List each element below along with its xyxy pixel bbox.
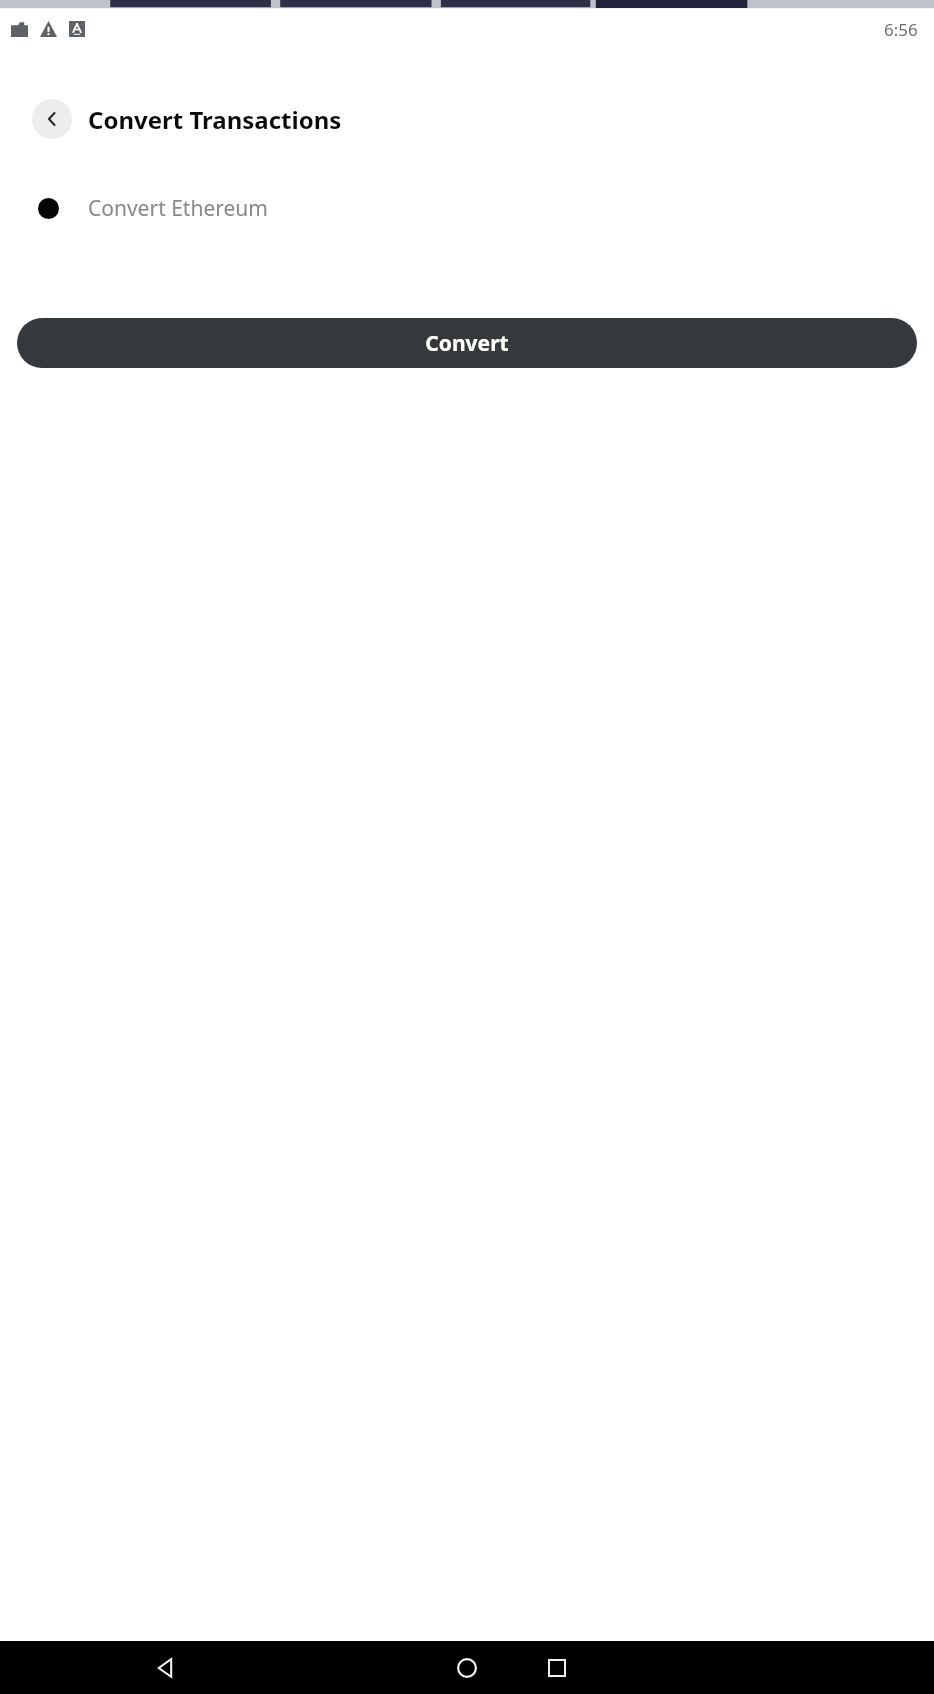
staticText: Convert Ethereum	[88, 194, 268, 223]
button[interactable]: Back	[32, 99, 72, 139]
button[interactable]: Home	[445, 1646, 489, 1690]
staticText: Convert Transactions	[88, 103, 342, 136]
button[interactable]: Recent apps	[535, 1646, 579, 1690]
button[interactable]: Back	[144, 1646, 188, 1690]
button[interactable]: Convert	[17, 318, 917, 368]
staticText: 6:56	[884, 18, 918, 41]
button[interactable]: Convert Ethereum	[0, 194, 934, 223]
staticText: Convert	[425, 329, 509, 358]
